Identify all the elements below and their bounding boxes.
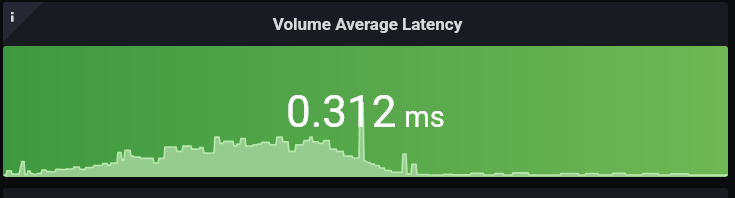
staticText: 0.312: [286, 86, 397, 138]
staticText: ms: [397, 100, 445, 134]
button[interactable]: Panel description: [5, 6, 21, 22]
button[interactable]: 0.312: [3, 46, 728, 177]
staticText: Volume Average Latency: [7, 14, 728, 34]
